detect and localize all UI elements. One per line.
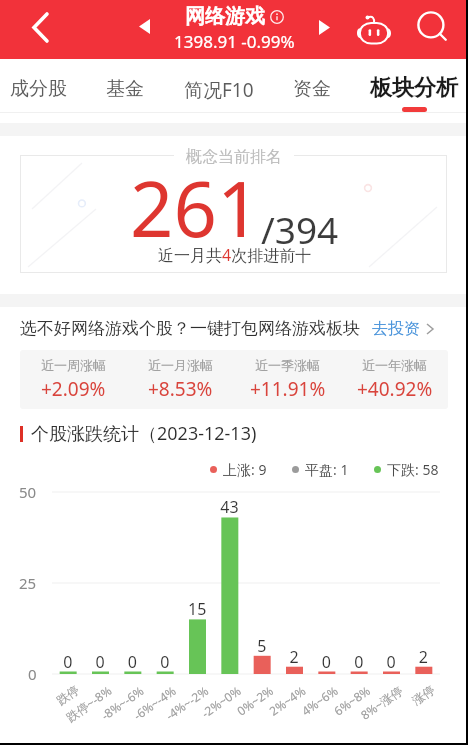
staticText: 下跌: 58 — [387, 460, 439, 479]
staticText: 简况F10 — [184, 77, 254, 103]
staticText: +8.53% — [148, 376, 213, 402]
button[interactable]: 去投资 — [372, 319, 435, 339]
staticText: 平盘: 1 — [305, 460, 349, 479]
staticText: 概念当前排名 — [186, 147, 282, 167]
staticText: 近一季涨幅 — [255, 357, 320, 373]
staticText: 网络游戏 — [185, 4, 265, 29]
button[interactable]: 资金 — [293, 59, 331, 113]
staticText: 近一年涨幅 — [362, 357, 427, 373]
staticText: +11.91% — [250, 376, 326, 402]
staticText: 近一月涨幅 — [148, 357, 213, 373]
staticText: 资金 — [293, 77, 331, 101]
staticText: 1398.91 -0.99% — [174, 30, 295, 53]
button[interactable]: Back — [18, 5, 63, 50]
staticText: 261 — [130, 156, 261, 260]
staticText: 去投资 — [372, 319, 420, 339]
button[interactable]: AI assistant — [353, 8, 394, 49]
button[interactable]: Search — [414, 8, 452, 46]
staticText: 成分股 — [10, 77, 67, 101]
staticText: 选不好网络游戏个股？一键打包网络游戏板块 — [20, 318, 360, 339]
staticText: +2.09% — [41, 376, 106, 402]
button[interactable]: 板块分析 — [370, 59, 458, 113]
staticText: 个股涨跌统计（2023-12-13) — [31, 421, 257, 446]
staticText: 近一月共4次排进前十 — [158, 244, 312, 266]
button[interactable]: Previous sector — [126, 8, 163, 45]
staticText: 上涨: 9 — [223, 460, 267, 479]
staticText: 基金 — [106, 77, 144, 101]
button[interactable]: 简况F10 — [184, 59, 254, 113]
button[interactable]: 成分股 — [10, 59, 67, 113]
button[interactable]: 基金 — [106, 59, 144, 113]
staticText: 近一周涨幅 — [41, 357, 106, 373]
staticText: +40.92% — [357, 376, 433, 402]
staticText: /394 — [261, 204, 339, 254]
staticText: 板块分析 — [370, 74, 458, 102]
button[interactable]: Next sector — [305, 8, 343, 46]
